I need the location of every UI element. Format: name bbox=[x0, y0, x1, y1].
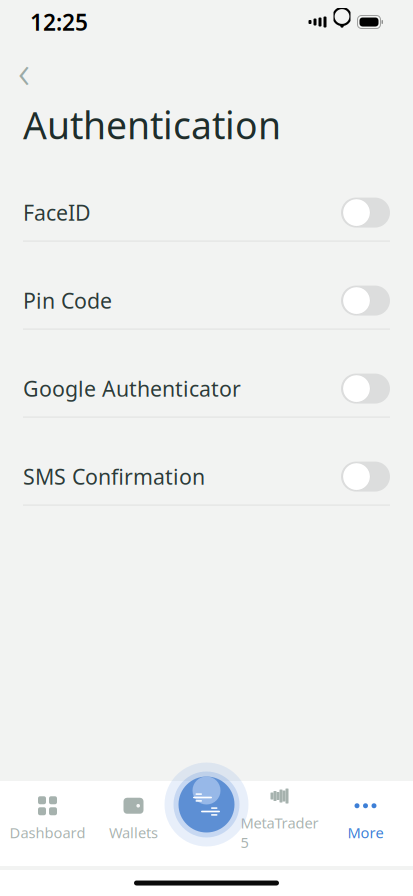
button[interactable]: Back bbox=[4, 54, 44, 88]
button[interactable]: Wallets bbox=[90, 791, 176, 845]
staticText: Authentication bbox=[23, 100, 281, 150]
staticText: Dashboard bbox=[9, 823, 85, 842]
button[interactable]: FaceID bbox=[0, 185, 413, 242]
staticText: Pin Code bbox=[23, 286, 112, 315]
staticText: SMS Confirmation bbox=[23, 462, 205, 491]
staticText: Wallets bbox=[109, 823, 158, 842]
button[interactable]: Pin Code bbox=[0, 273, 413, 330]
staticText: MetaTrader 5 bbox=[240, 813, 318, 852]
button[interactable]: MetaTrader 5 bbox=[236, 791, 322, 845]
staticText: Google Authenticator bbox=[23, 374, 241, 403]
staticText: ‹ bbox=[18, 41, 30, 101]
staticText: FaceID bbox=[23, 198, 91, 227]
button[interactable]: Transfer bbox=[163, 761, 249, 847]
staticText: More bbox=[347, 823, 383, 842]
staticText: 12:25 bbox=[30, 7, 88, 37]
button[interactable]: Google Authenticator bbox=[0, 361, 413, 418]
button[interactable]: Dashboard bbox=[4, 791, 90, 845]
button[interactable]: More bbox=[322, 791, 408, 845]
button[interactable]: SMS Confirmation bbox=[0, 449, 413, 506]
